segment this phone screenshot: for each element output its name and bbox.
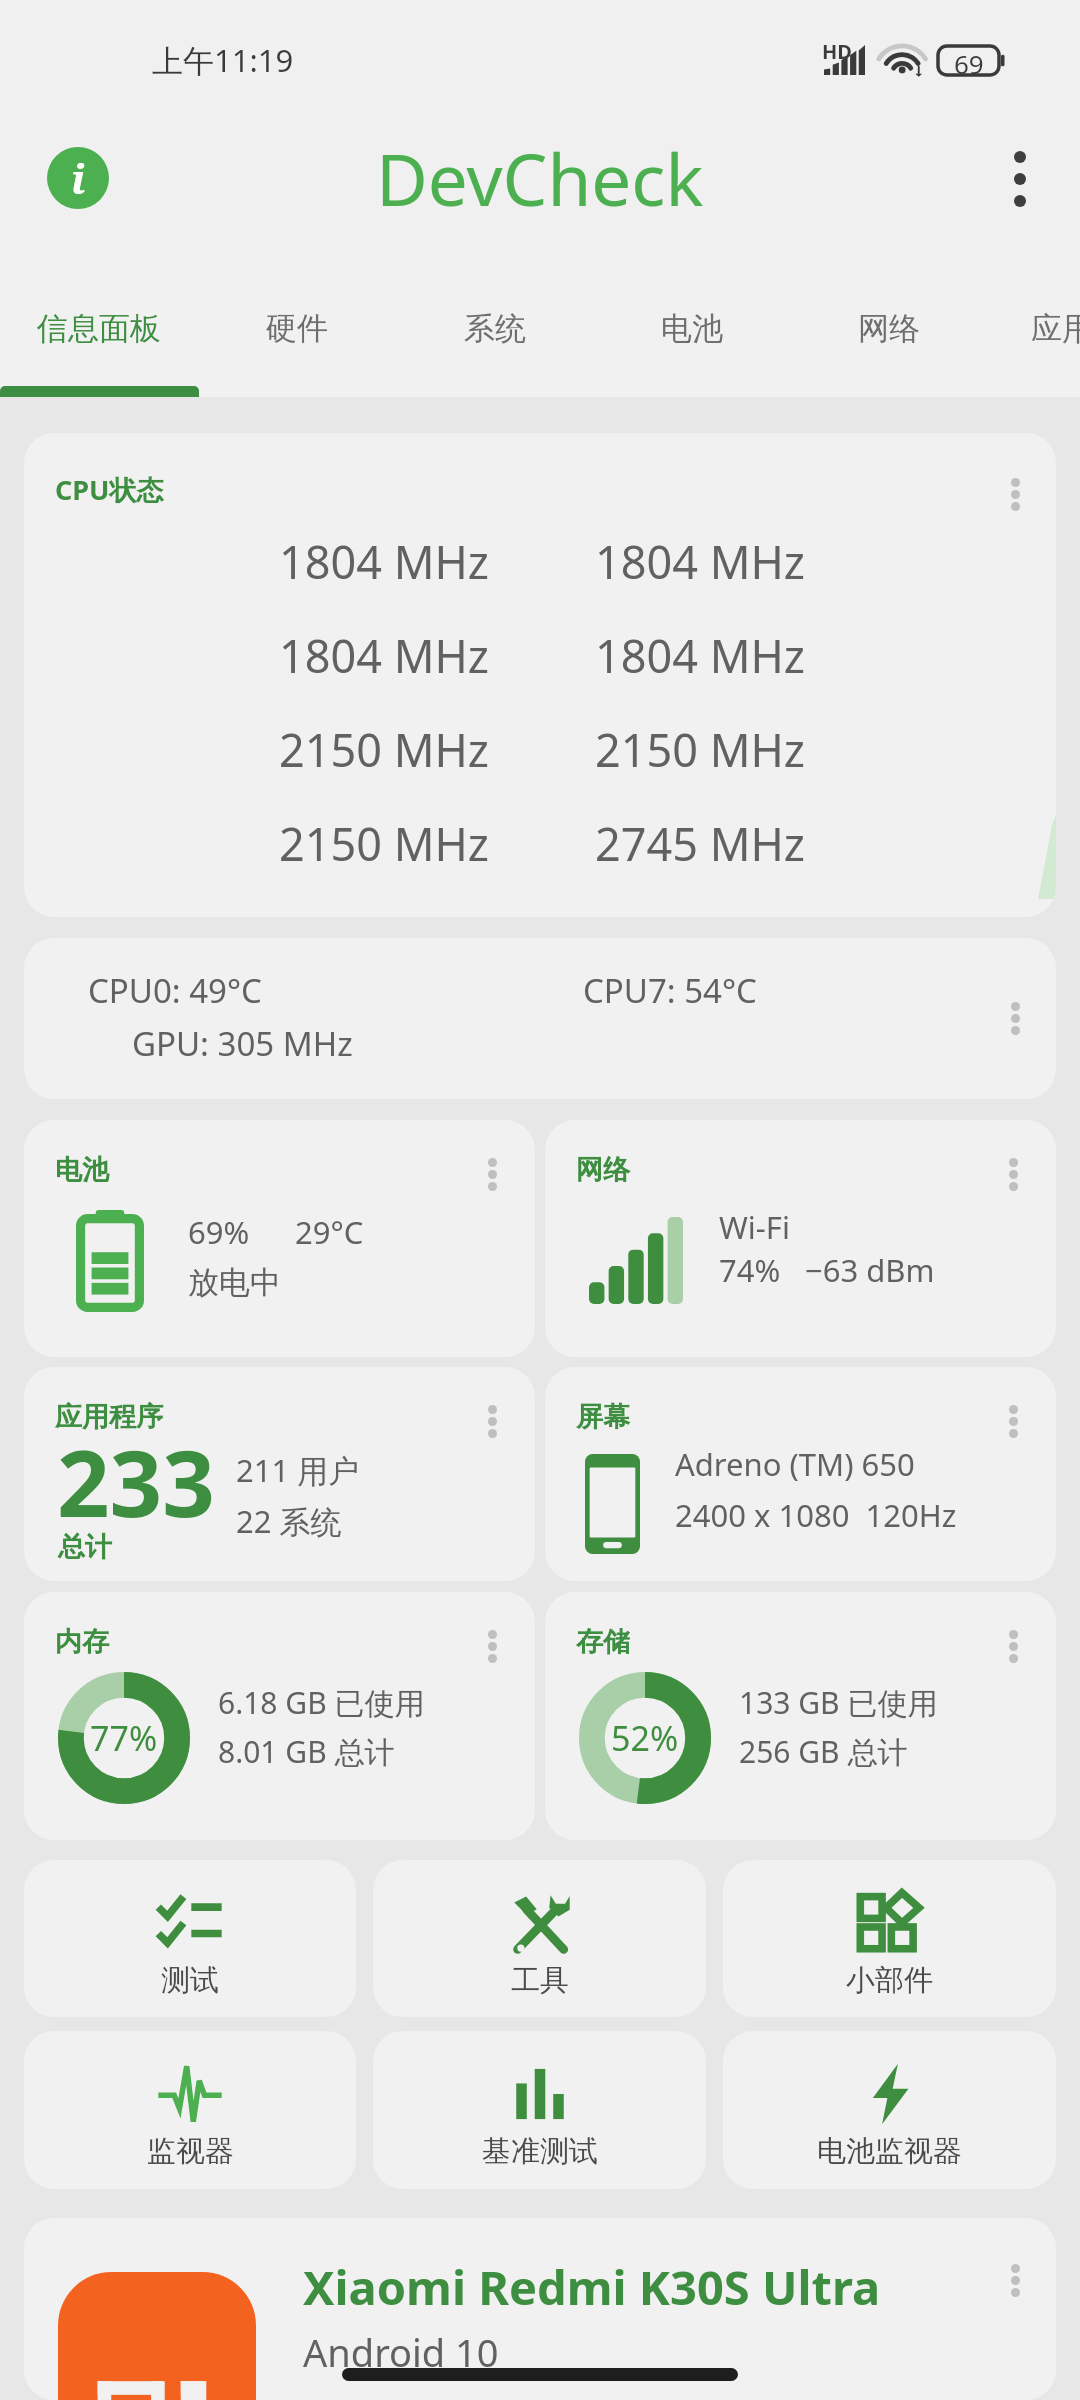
button[interactable]: 屏幕 (545, 1367, 1056, 1581)
staticText: 应用 (1031, 309, 1080, 348)
staticText: GPU: 305 MHz (132, 1021, 353, 1066)
button[interactable]: 网络 (791, 260, 987, 397)
staticText: 电池监视器 (817, 2133, 962, 2170)
staticText: 总计 (58, 1530, 112, 1564)
staticText: 放电中 (188, 1263, 281, 1302)
button[interactable]: 网络 (545, 1120, 1056, 1357)
staticText: 6.18 GB 已使用 (218, 1682, 425, 1723)
staticText: Adreno (TM) 650 (675, 1443, 915, 1485)
staticText: 测试 (161, 1962, 219, 1999)
staticText: 1804 MHz (595, 531, 805, 592)
staticText: 工具 (511, 1962, 569, 1999)
button[interactable]: More options (973, 1606, 1054, 1687)
staticText: 74% (719, 1249, 781, 1291)
staticText: CPU状态 (55, 471, 164, 508)
button[interactable]: CPU状态 (24, 433, 1056, 917)
staticText: Xiaomi Redmi K30S Ultra (303, 2255, 881, 2319)
staticText: 信息面板 (37, 309, 161, 348)
staticText: CPU0: 49°C (88, 968, 262, 1013)
staticText: 网络 (858, 309, 920, 348)
staticText: 2150 MHz (279, 719, 489, 780)
staticText: 2745 MHz (595, 813, 805, 874)
staticText: 电池 (55, 1153, 109, 1187)
staticText: 52% (611, 1715, 679, 1761)
button[interactable]: 电池 (594, 260, 790, 397)
staticText: CPU7: 54°C (583, 968, 757, 1013)
button[interactable]: 应用 (964, 260, 1080, 397)
staticText: 1804 MHz (279, 531, 489, 592)
staticText: 69% (188, 1211, 250, 1253)
button[interactable]: More options (452, 1381, 533, 1462)
staticText: 存储 (576, 1625, 630, 1659)
staticText: 2150 MHz (595, 719, 805, 780)
staticText: −63 dBm (805, 1249, 935, 1291)
staticText: HD (822, 38, 852, 65)
staticText: 256 GB 总计 (739, 1731, 908, 1772)
staticText: 上午11:19 (152, 39, 294, 81)
button[interactable]: More options (973, 1381, 1054, 1462)
button[interactable]: 应用程序 (24, 1367, 535, 1581)
button[interactable]: 监视器 (24, 2031, 356, 2189)
button[interactable]: 系统 (397, 260, 593, 397)
staticText: 233 (57, 1419, 215, 1544)
staticText: 硬件 (266, 309, 328, 348)
button[interactable]: 存储 (545, 1592, 1056, 1840)
staticText: 2150 MHz (279, 813, 489, 874)
button[interactable]: More options (452, 1134, 533, 1215)
staticText: 屏幕 (576, 1400, 630, 1434)
staticText: 小部件 (846, 1962, 933, 1999)
button[interactable]: 电池监视器 (723, 2031, 1056, 2189)
staticText: 电池 (661, 309, 723, 348)
button[interactable]: More options (979, 138, 1060, 219)
staticText: 内存 (55, 1625, 109, 1659)
button[interactable]: 工具 (373, 1860, 706, 2017)
staticText: 77% (90, 1715, 158, 1761)
button[interactable]: 信息面板 (1, 260, 197, 397)
button[interactable]: More options (975, 978, 1056, 1059)
staticText: Android 10 (303, 2326, 499, 2378)
button[interactable]: Xiaomi Redmi K30S Ultra (24, 2218, 1056, 2400)
button[interactable]: Info (34, 134, 122, 222)
button[interactable]: CPU0: 49°C (24, 938, 1056, 1099)
staticText: i (71, 151, 86, 205)
staticText: 69 (954, 46, 984, 81)
button[interactable]: 基准测试 (373, 2031, 706, 2189)
button[interactable]: 内存 (24, 1592, 535, 1840)
staticText: 2400 x 1080 120Hz (675, 1494, 957, 1536)
staticText: 网络 (576, 1153, 630, 1187)
staticText: 应用程序 (55, 1400, 163, 1434)
button[interactable]: 小部件 (723, 1860, 1056, 2017)
staticText: Wi-Fi (719, 1206, 790, 1248)
button[interactable]: More options (452, 1606, 533, 1687)
staticText: 22 系统 (236, 1500, 342, 1542)
staticText: 监视器 (147, 2133, 234, 2170)
staticText: 系统 (464, 309, 526, 348)
button[interactable]: 测试 (24, 1860, 356, 2017)
button[interactable]: More options (975, 2240, 1056, 2321)
staticText: 1804 MHz (595, 625, 805, 686)
staticText: 211 用户 (236, 1449, 360, 1491)
staticText: 1804 MHz (279, 625, 489, 686)
button[interactable]: More options (973, 1134, 1054, 1215)
staticText: 29°C (295, 1211, 364, 1253)
button[interactable]: 电池 (24, 1120, 535, 1357)
staticText: 基准测试 (482, 2133, 598, 2170)
button[interactable]: 硬件 (199, 260, 395, 397)
staticText: 8.01 GB 总计 (218, 1731, 395, 1772)
staticText: DevCheck (376, 130, 704, 227)
button[interactable]: More options (975, 454, 1056, 535)
staticText: 133 GB 已使用 (739, 1682, 938, 1723)
